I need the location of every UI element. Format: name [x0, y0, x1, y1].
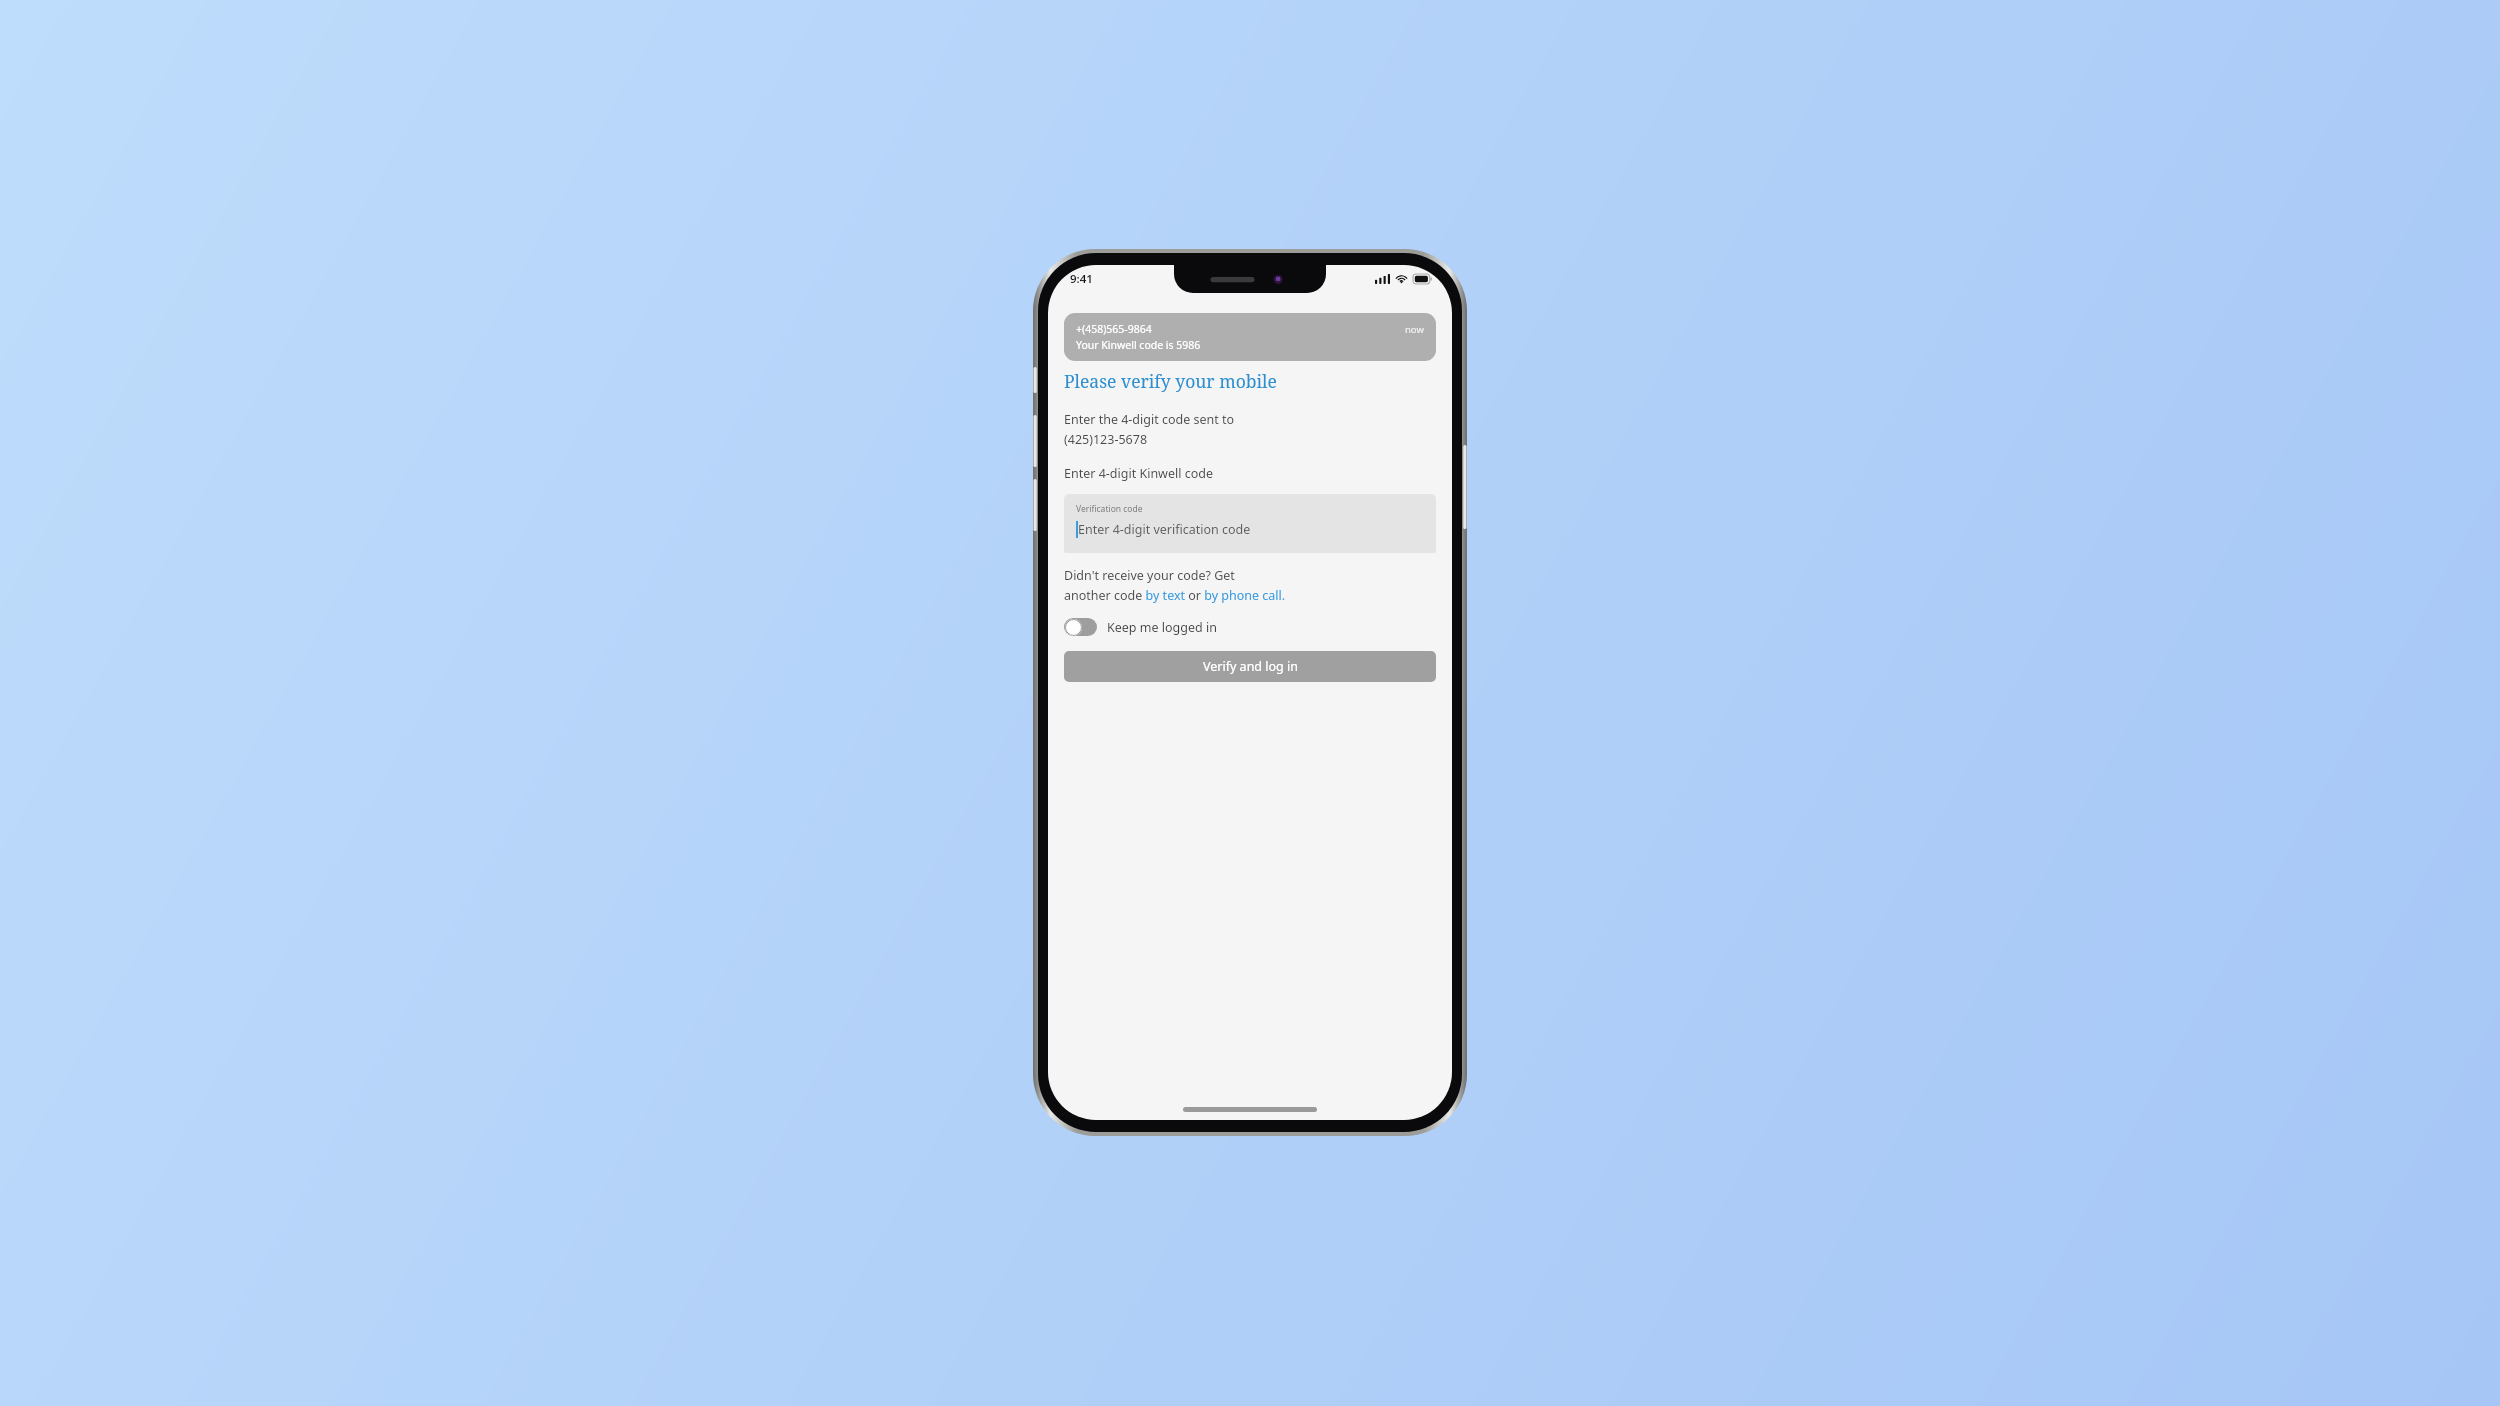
staticText: another code by text or by phone call. — [1064, 587, 1286, 604]
button[interactable]: Verification code — [1064, 494, 1436, 553]
staticText: Enter 4-digit verification code — [1078, 521, 1251, 538]
staticText: now — [1405, 323, 1424, 336]
staticText: Your Kinwell code is 5986 — [1076, 338, 1201, 352]
staticText: Enter 4-digit Kinwell code — [1064, 465, 1213, 482]
staticText: Didn't receive your code? Get — [1064, 567, 1235, 584]
staticText: Verification code — [1076, 503, 1143, 515]
staticText: Enter the 4-digit code sent to — [1064, 411, 1235, 428]
other: Keep me logged in toggle — [1064, 618, 1097, 636]
staticText: Keep me logged in — [1107, 619, 1217, 636]
button[interactable]: Verify and log in — [1064, 651, 1436, 682]
button[interactable]: +(458)565-9864 — [1064, 313, 1436, 361]
staticText: 9:41 — [1070, 271, 1093, 287]
staticText: Please verify your mobile — [1064, 369, 1277, 393]
staticText: Verify and log in — [1203, 658, 1298, 675]
staticText: (425)123-5678 — [1064, 431, 1148, 448]
button[interactable]: Didn't receive your code? Get — [1064, 567, 1286, 604]
button[interactable]: Keep me logged in toggle — [1064, 618, 1217, 636]
staticText: +(458)565-9864 — [1076, 322, 1152, 336]
